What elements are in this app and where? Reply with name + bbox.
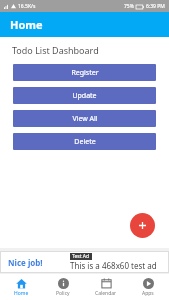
button[interactable]: Calendar — [85, 278, 127, 297]
staticText: 6:39 PM — [146, 3, 165, 10]
button[interactable]: Update — [13, 87, 156, 104]
staticText: This is a 468x60 test ad — [70, 260, 157, 271]
staticText: Calendar — [95, 290, 117, 297]
staticText: Test Ad — [72, 253, 90, 260]
staticText: Nice job! — [8, 257, 43, 268]
staticText: Policy — [56, 290, 70, 297]
button[interactable]: Nice job! — [0, 251, 169, 273]
staticText: Home — [14, 290, 29, 297]
staticText: View All — [72, 114, 98, 124]
staticText: Register — [71, 68, 99, 78]
staticText: Todo List Dashboard — [12, 44, 99, 56]
staticText: 75% — [124, 3, 134, 10]
button[interactable]: Register — [13, 64, 156, 81]
staticText: Update — [72, 91, 97, 101]
button[interactable]: View All — [13, 110, 156, 127]
button[interactable]: Add todo — [130, 213, 155, 238]
button[interactable]: Policy — [42, 278, 84, 297]
staticText: Delete — [74, 137, 96, 147]
staticText: Home — [10, 17, 43, 32]
button[interactable]: Home — [0, 278, 42, 297]
button[interactable]: Delete — [13, 133, 156, 150]
staticText: Apps — [142, 290, 154, 297]
staticText: 16.5K/s — [18, 3, 36, 10]
button[interactable]: Apps — [127, 278, 169, 297]
